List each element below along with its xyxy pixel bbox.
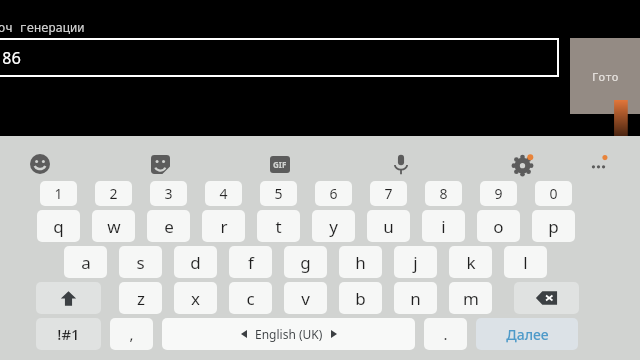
staticText: q <box>53 215 64 238</box>
button[interactable]: b <box>339 282 382 314</box>
button[interactable]: d <box>174 246 217 278</box>
staticText: 2 <box>109 184 118 203</box>
button[interactable]: p <box>532 210 575 242</box>
staticText: 5 <box>274 184 283 203</box>
button[interactable]: l <box>504 246 547 278</box>
staticText: Далее <box>506 325 549 344</box>
staticText: e <box>164 215 174 238</box>
staticText: 6 <box>329 184 338 203</box>
button[interactable]: 6 <box>315 181 352 206</box>
button[interactable]: e <box>147 210 190 242</box>
button[interactable]: 5 <box>260 181 297 206</box>
button[interactable]: o <box>477 210 520 242</box>
button[interactable]: GIF <box>258 142 302 186</box>
button[interactable]: s <box>119 246 162 278</box>
staticText: 1 <box>54 184 63 203</box>
staticText: h <box>355 251 366 274</box>
button[interactable]: Settings <box>500 142 544 186</box>
button[interactable]: Space, English (UK) <box>162 318 415 350</box>
staticText: оч генерации <box>0 19 85 35</box>
button[interactable]: r <box>202 210 245 242</box>
staticText: v <box>301 287 310 310</box>
staticText: 0 <box>549 184 558 203</box>
button[interactable]: x <box>174 282 217 314</box>
button[interactable]: 7 <box>370 181 407 206</box>
button[interactable]: Emoji <box>18 142 62 186</box>
button[interactable]: w <box>92 210 135 242</box>
staticText: b <box>355 287 366 310</box>
staticText: t <box>275 215 282 238</box>
button[interactable]: 9 <box>480 181 517 206</box>
button[interactable]: g <box>284 246 327 278</box>
staticText: y <box>329 215 338 238</box>
button[interactable]: c <box>229 282 272 314</box>
staticText: 7 <box>384 184 393 203</box>
button[interactable]: u <box>367 210 410 242</box>
staticText: !#1 <box>57 324 80 344</box>
button[interactable]: 2 <box>95 181 132 206</box>
staticText: . <box>443 324 448 344</box>
staticText: j <box>413 251 418 274</box>
staticText: 9 <box>494 184 503 203</box>
button[interactable]: a <box>64 246 107 278</box>
staticText: GIF <box>273 159 287 170</box>
button[interactable]: Voice input <box>379 142 423 186</box>
staticText: i <box>441 215 446 238</box>
button[interactable]: n <box>394 282 437 314</box>
button[interactable]: t <box>257 210 300 242</box>
staticText: c <box>246 287 255 310</box>
staticText: l <box>523 251 528 274</box>
staticText: f <box>248 251 254 274</box>
button[interactable]: y <box>312 210 355 242</box>
staticText: x <box>191 287 200 310</box>
button[interactable]: z <box>119 282 162 314</box>
staticText: o <box>493 215 504 238</box>
staticText: 8 <box>439 184 448 203</box>
staticText: English (UK) <box>255 326 323 342</box>
button[interactable]: 3 <box>150 181 187 206</box>
staticText: d <box>190 251 201 274</box>
staticText: 4 <box>219 184 228 203</box>
staticText: s <box>136 251 145 274</box>
button[interactable]: . <box>424 318 467 350</box>
staticText: n <box>410 287 421 310</box>
staticText: w <box>107 215 121 238</box>
staticText: 3 <box>164 184 173 203</box>
button[interactable]: m <box>449 282 492 314</box>
staticText: u <box>383 215 394 238</box>
button[interactable]: , <box>110 318 153 350</box>
staticText: g <box>300 251 311 274</box>
button[interactable]: 8 <box>425 181 462 206</box>
button[interactable]: q <box>37 210 80 242</box>
button[interactable]: k <box>449 246 492 278</box>
staticText: k <box>466 251 476 274</box>
button[interactable]: 4 <box>205 181 242 206</box>
button[interactable]: Backspace <box>514 282 579 314</box>
staticText: m <box>463 287 479 310</box>
button[interactable]: !#1 <box>36 318 101 350</box>
button[interactable]: j <box>394 246 437 278</box>
button[interactable]: Stickers <box>138 142 182 186</box>
staticText: r <box>220 215 228 238</box>
button[interactable]: 0 <box>535 181 572 206</box>
staticText: 86 <box>2 47 22 69</box>
button[interactable]: f <box>229 246 272 278</box>
staticText: , <box>129 324 134 344</box>
button[interactable]: Далее <box>476 318 578 350</box>
staticText: a <box>81 251 91 274</box>
button[interactable]: Shift <box>36 282 101 314</box>
staticText: z <box>137 287 145 310</box>
staticText: p <box>548 215 559 238</box>
staticText: Гото <box>592 69 619 84</box>
button[interactable]: 86 <box>0 38 559 77</box>
button[interactable]: v <box>284 282 327 314</box>
button[interactable]: Гото <box>570 38 640 114</box>
button[interactable]: h <box>339 246 382 278</box>
button[interactable]: More options <box>576 142 620 186</box>
button[interactable]: 1 <box>40 181 77 206</box>
button[interactable]: i <box>422 210 465 242</box>
